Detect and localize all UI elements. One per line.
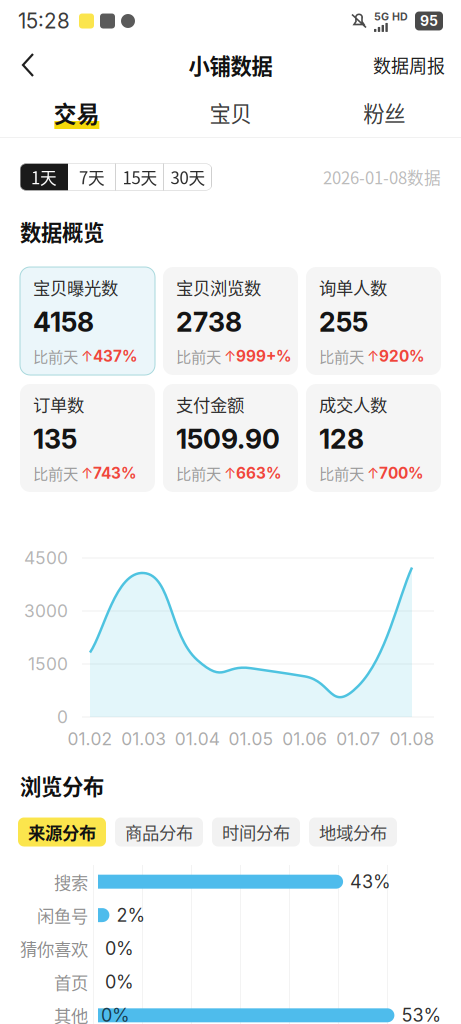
staticText: ↑ <box>224 347 236 365</box>
staticText: 搜索 <box>54 869 88 894</box>
staticText: 0% <box>105 938 134 959</box>
staticText: 01.05 <box>228 728 273 749</box>
staticText: 1500 <box>28 653 68 674</box>
button[interactable]: 宝贝 <box>154 88 307 137</box>
staticText: 663% <box>236 464 282 482</box>
staticText: 0% <box>105 971 134 993</box>
staticText: 1天 <box>31 165 57 189</box>
staticText: 43% <box>350 871 391 893</box>
staticText: 支付金额 <box>176 392 244 417</box>
staticText: 比前天 <box>319 462 364 484</box>
staticText: 其他 <box>54 1003 88 1024</box>
staticText: 宝贝浏览数 <box>176 275 261 300</box>
staticText: 1509.90 <box>176 423 280 455</box>
staticText: 比前天 <box>319 345 364 367</box>
button[interactable]: 返回 <box>10 45 52 85</box>
button[interactable]: 支付金额 <box>163 384 298 492</box>
staticText: 比前天 <box>176 462 221 484</box>
staticText: 0% <box>101 1004 130 1024</box>
staticText: 粉丝 <box>363 97 405 128</box>
button[interactable]: 1天 <box>20 163 68 190</box>
staticText: 95 <box>420 12 438 29</box>
staticText: 地域分布 <box>319 819 387 845</box>
button[interactable]: 粉丝 <box>307 88 461 137</box>
staticText: 宝贝 <box>209 97 251 128</box>
staticText: 宝贝曝光数 <box>33 275 118 300</box>
staticText: 数据周报 <box>373 52 445 78</box>
staticText: 浏览分布 <box>20 770 104 801</box>
staticText: 2% <box>116 904 145 926</box>
staticText: 2738 <box>176 306 242 338</box>
staticText: 猜你喜欢 <box>20 936 88 961</box>
button[interactable]: 7天 <box>68 163 116 190</box>
button[interactable]: 时间分布 <box>212 817 300 846</box>
button[interactable]: 宝贝浏览数 <box>163 267 298 375</box>
staticText: 首页 <box>54 969 88 994</box>
staticText: 5G HD <box>374 10 408 23</box>
staticText: 闲鱼号 <box>37 903 88 928</box>
staticText: 交易 <box>54 96 100 129</box>
button[interactable]: 宝贝曝光数 <box>20 267 155 375</box>
staticText: 920% <box>379 347 425 365</box>
staticText: 999+% <box>236 347 292 365</box>
staticText: ↑ <box>81 347 93 365</box>
staticText: 询单人数 <box>319 275 387 300</box>
staticText: 15:28 <box>18 8 70 33</box>
staticText: ↑ <box>224 464 236 482</box>
staticText: 订单数 <box>33 392 84 417</box>
staticText: 来源分布 <box>28 819 96 845</box>
staticText: 成交人数 <box>319 392 387 417</box>
staticText: 时间分布 <box>222 819 290 845</box>
staticText: 比前天 <box>33 462 78 484</box>
button[interactable]: 订单数 <box>20 384 155 492</box>
staticText: 01.06 <box>282 728 327 749</box>
staticText: 255 <box>319 306 368 338</box>
staticText: ↑ <box>367 347 379 365</box>
button[interactable]: 来源分布 <box>18 817 106 846</box>
staticText: 128 <box>319 423 364 455</box>
staticText: 比前天 <box>33 345 78 367</box>
button[interactable]: 询单人数 <box>306 267 441 375</box>
button[interactable]: 商品分布 <box>115 817 203 846</box>
staticText: 15天 <box>122 165 157 189</box>
staticText: 743% <box>93 464 137 482</box>
staticText: 4158 <box>33 306 94 338</box>
staticText: 比前天 <box>176 345 221 367</box>
staticText: 01.02 <box>67 728 112 749</box>
staticText: 53% <box>401 1004 441 1024</box>
staticText: 7天 <box>79 165 105 189</box>
staticText: 135 <box>33 423 77 455</box>
staticText: 30天 <box>170 165 205 189</box>
staticText: 数据概览 <box>20 216 104 247</box>
staticText: 4500 <box>24 547 68 568</box>
staticText: 2026-01-08数据 <box>323 165 441 189</box>
staticText: 01.03 <box>121 728 166 749</box>
staticText: 0 <box>57 706 68 727</box>
staticText: ↑ <box>367 464 379 482</box>
button[interactable]: 交易 <box>0 88 154 137</box>
button[interactable]: 30天 <box>164 163 212 190</box>
staticText: ↑ <box>81 464 93 482</box>
button[interactable]: 15天 <box>116 163 164 190</box>
staticText: 437% <box>93 347 138 365</box>
staticText: 01.04 <box>175 728 220 749</box>
staticText: 商品分布 <box>125 819 193 845</box>
staticText: 700% <box>379 464 424 482</box>
staticText: 小铺数据 <box>188 50 272 80</box>
button[interactable]: 地域分布 <box>309 817 397 846</box>
button[interactable]: 数据周报 <box>367 42 451 88</box>
staticText: 01.07 <box>336 728 380 749</box>
staticText: 3000 <box>24 600 68 621</box>
button[interactable]: 成交人数 <box>306 384 441 492</box>
staticText: 01.08 <box>389 728 434 749</box>
